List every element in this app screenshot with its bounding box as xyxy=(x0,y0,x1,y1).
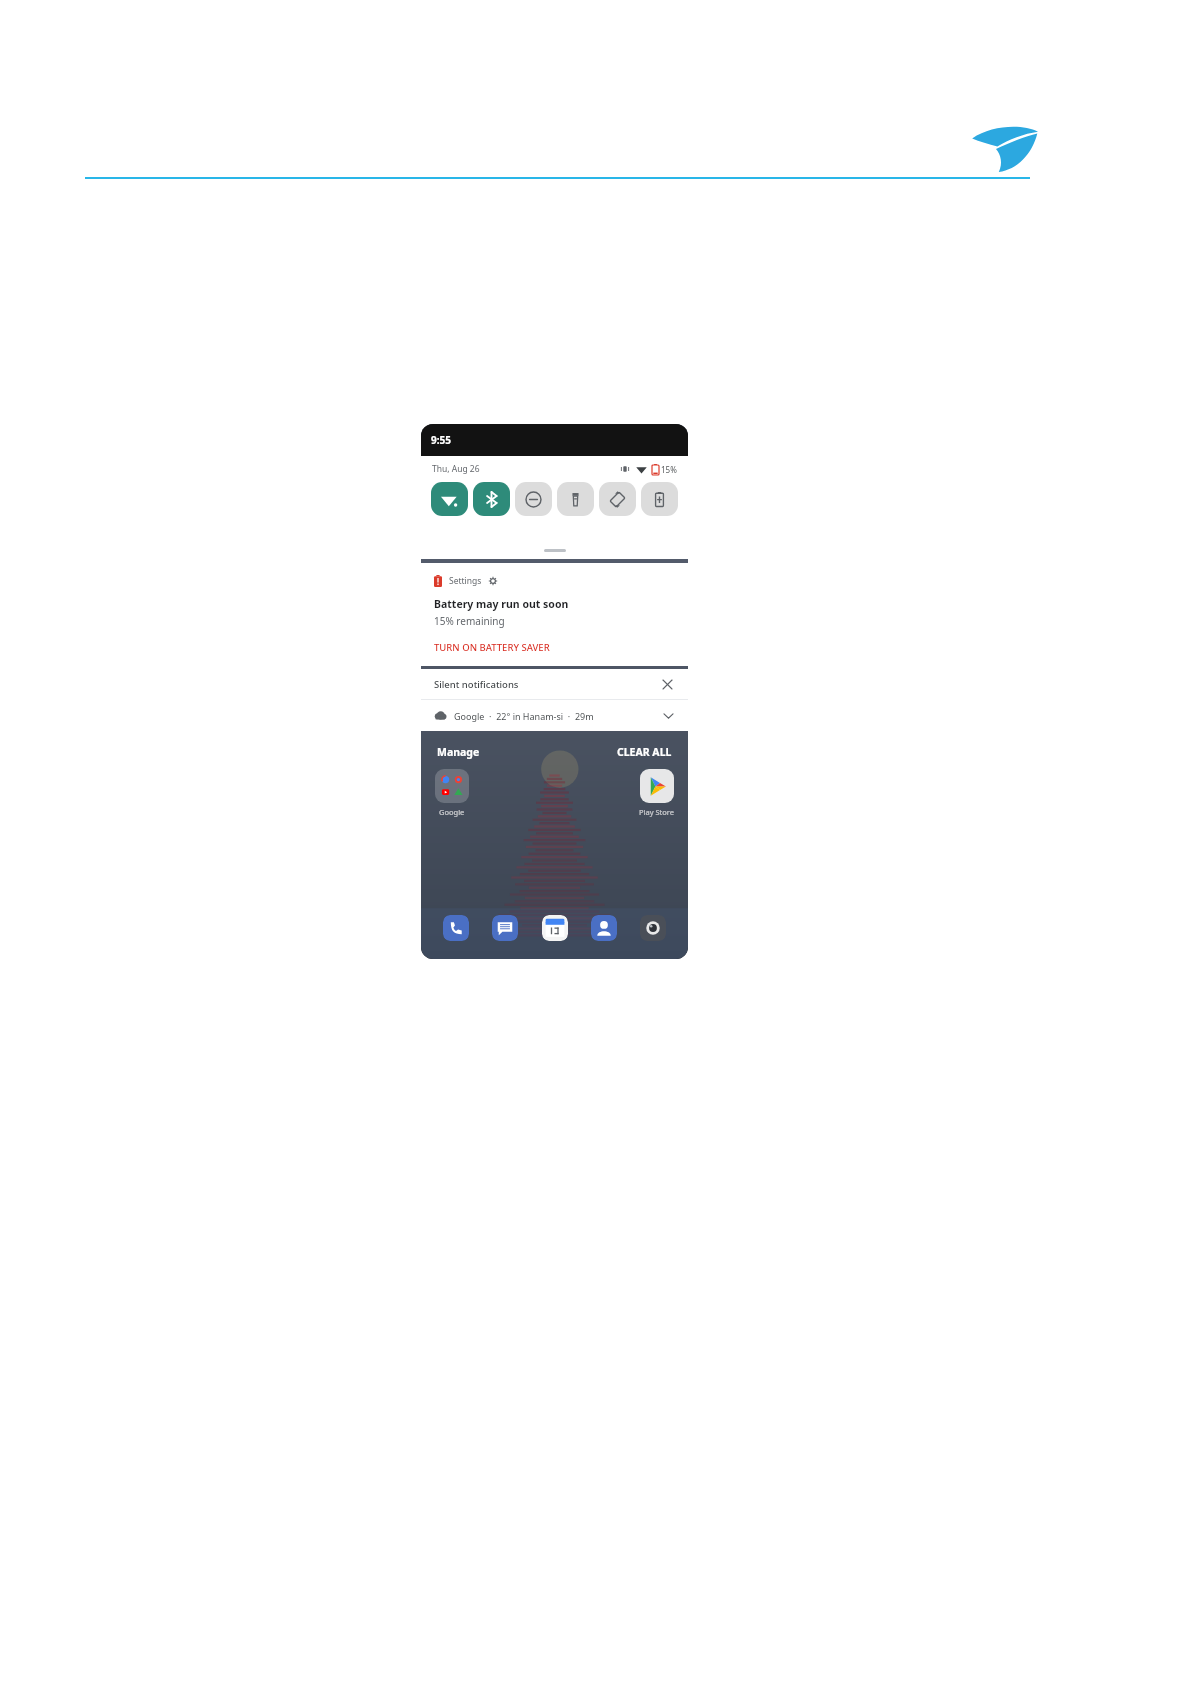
button[interactable]: Play Store xyxy=(640,769,674,803)
button[interactable]: TURN ON BATTERY SAVER xyxy=(434,641,550,654)
staticText: Google xyxy=(439,807,465,817)
staticText: 9:55 xyxy=(431,433,451,447)
button[interactable]: Do not disturb xyxy=(515,482,552,516)
button[interactable]: Settings xyxy=(421,563,688,666)
staticText: Google · 22° in Hanam-si · 29m xyxy=(454,710,594,722)
staticText: TURN ON BATTERY SAVER xyxy=(434,641,550,654)
staticText: CLEAR ALL xyxy=(617,745,672,759)
button[interactable]: Phone xyxy=(443,915,469,941)
button[interactable]: Google folder xyxy=(435,769,469,803)
button[interactable]: Dismiss silent notifications xyxy=(659,676,675,692)
staticText: Play Store xyxy=(639,807,674,817)
button[interactable]: CLEAR ALL xyxy=(615,743,674,761)
button[interactable]: Flashlight xyxy=(557,482,594,516)
button[interactable]: Camera xyxy=(640,915,666,941)
staticText: Settings xyxy=(449,575,482,587)
button[interactable]: Contacts xyxy=(591,915,617,941)
button[interactable]: Wi-Fi xyxy=(431,482,468,516)
button[interactable]: Manage xyxy=(435,743,482,761)
button[interactable]: Auto-rotate xyxy=(599,482,636,516)
staticText: 15% xyxy=(661,464,677,475)
button[interactable]: Google · 22° in Hanam-si · 29m xyxy=(421,700,688,731)
staticText: Manage xyxy=(437,745,480,759)
staticText: Thu, Aug 26 xyxy=(432,463,480,475)
button[interactable]: Calendar xyxy=(542,915,568,941)
button[interactable]: Bluetooth xyxy=(473,482,510,516)
button[interactable]: Expand xyxy=(661,709,675,723)
staticText: 15% remaining xyxy=(434,614,505,628)
button[interactable]: Battery saver xyxy=(641,482,678,516)
staticText: Battery may run out soon xyxy=(434,597,569,611)
staticText: Silent notifications xyxy=(434,678,519,691)
button[interactable]: Messages xyxy=(492,915,518,941)
